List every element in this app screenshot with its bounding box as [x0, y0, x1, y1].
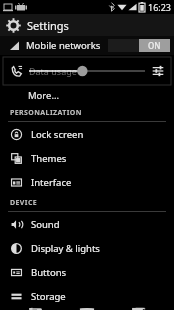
staticText: Settings	[27, 18, 69, 33]
staticText: Display & lights	[31, 242, 100, 255]
button[interactable]: Mobile networks toggle	[108, 39, 170, 52]
button[interactable]: Themes	[0, 146, 174, 170]
button[interactable]: Home	[70, 308, 104, 310]
staticText: Storage	[31, 290, 66, 303]
staticText: ON	[148, 40, 161, 51]
staticText: Themes	[31, 152, 67, 165]
button[interactable]: Storage	[0, 284, 174, 308]
button[interactable]: Data usage	[3, 57, 171, 85]
staticText: PERSONALIZATION	[10, 108, 82, 118]
staticText: Mobile networks	[26, 39, 101, 52]
button[interactable]: Back	[18, 308, 52, 310]
button[interactable]: More...	[0, 87, 174, 104]
staticText: Buttons	[31, 266, 67, 279]
staticText: Interface	[31, 176, 72, 189]
staticText: 16:23	[148, 1, 172, 13]
button[interactable]: Buttons	[0, 260, 174, 284]
staticText: Sound	[31, 218, 60, 231]
staticText: Data usage	[29, 65, 77, 77]
button[interactable]: Sound	[0, 212, 174, 236]
staticText: DEVICE	[10, 198, 38, 208]
button[interactable]: Interface	[0, 170, 174, 194]
staticText: More...	[28, 89, 60, 102]
button[interactable]: Display & lights	[0, 236, 174, 260]
button[interactable]: Recents	[122, 308, 156, 310]
button[interactable]: Tune	[151, 64, 165, 78]
staticText: Lock screen	[31, 128, 84, 141]
button[interactable]: Lock screen	[0, 122, 174, 146]
button[interactable]: Mobile networks	[0, 36, 174, 55]
